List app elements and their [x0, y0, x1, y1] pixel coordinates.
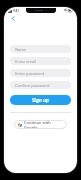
button[interactable]: Confirm password — [10, 81, 71, 89]
staticText: Continue with Google — [24, 120, 63, 129]
button[interactable]: Enter email — [10, 57, 71, 65]
button[interactable]: Continue with Google — [14, 120, 67, 129]
staticText: Enter password — [15, 71, 45, 76]
staticText: Enter email — [15, 59, 37, 64]
staticText: 9:41 — [13, 9, 19, 13]
staticText: Confirm password — [15, 83, 50, 88]
button[interactable]: Enter password — [10, 69, 71, 77]
staticText: Name — [15, 47, 27, 52]
button[interactable]: Sign up — [10, 95, 71, 105]
staticText: Sign up — [32, 97, 49, 103]
button[interactable]: Name — [10, 45, 71, 53]
button[interactable]: Back — [9, 14, 18, 23]
